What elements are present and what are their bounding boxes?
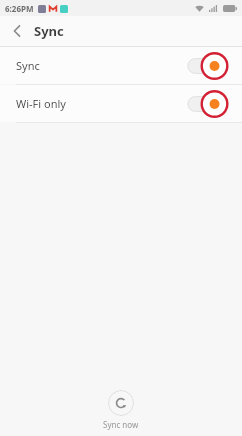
staticText: Sync	[34, 22, 64, 40]
staticText: Sync	[16, 58, 40, 73]
staticText: Sync now	[103, 419, 139, 430]
button[interactable]: Sync	[0, 47, 242, 84]
staticText: 6:26PM	[5, 3, 34, 14]
button[interactable]: Wi-Fi only	[0, 85, 242, 122]
button[interactable]: Toggle	[186, 88, 232, 120]
other: Sync now	[108, 390, 134, 416]
button[interactable]: Toggle	[186, 50, 232, 82]
button[interactable]: Back	[0, 16, 34, 46]
staticText: Wi-Fi only	[16, 96, 66, 111]
button[interactable]: Sync now	[0, 390, 242, 430]
